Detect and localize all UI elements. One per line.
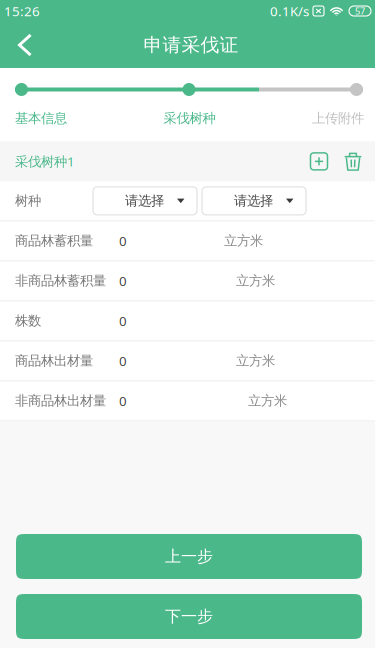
staticText: 商品林出材量 bbox=[15, 353, 93, 369]
button[interactable]: 请选择 bbox=[202, 187, 306, 215]
staticText: 采伐树种1 bbox=[15, 152, 75, 170]
staticText: 0.1K/s bbox=[270, 2, 309, 20]
button[interactable]: Add cutting species bbox=[302, 141, 336, 181]
staticText: 0 bbox=[119, 272, 127, 290]
button[interactable]: Back bbox=[0, 22, 46, 68]
staticText: 0 bbox=[119, 392, 127, 410]
staticText: 15:26 bbox=[4, 2, 40, 20]
staticText: 下一步 bbox=[165, 607, 213, 626]
staticText: 非商品林出材量 bbox=[15, 393, 106, 409]
button[interactable]: 下一步 bbox=[16, 594, 362, 639]
button[interactable]: Delete cutting species bbox=[336, 141, 370, 181]
staticText: 采伐树种 bbox=[163, 110, 215, 126]
staticText: 请选择 bbox=[125, 193, 164, 209]
staticText: 立方米 bbox=[236, 273, 275, 289]
staticText: 株数 bbox=[15, 313, 41, 329]
staticText: 基本信息 bbox=[15, 110, 67, 126]
staticText: 57 bbox=[355, 5, 365, 17]
staticText: 立方米 bbox=[248, 393, 287, 409]
staticText: 上一步 bbox=[165, 547, 213, 566]
staticText: 0 bbox=[119, 232, 127, 250]
staticText: 上传附件 bbox=[312, 110, 364, 126]
staticText: 商品林蓄积量 bbox=[15, 233, 93, 249]
button[interactable]: 上一步 bbox=[16, 534, 362, 579]
staticText: 立方米 bbox=[236, 353, 275, 369]
staticText: 树种 bbox=[15, 193, 41, 209]
staticText: 0 bbox=[119, 312, 127, 330]
staticText: 0 bbox=[119, 352, 127, 370]
staticText: 立方米 bbox=[224, 233, 263, 249]
staticText: 非商品林蓄积量 bbox=[15, 273, 106, 289]
button[interactable]: 请选择 bbox=[93, 187, 197, 215]
staticText: 申请采伐证 bbox=[143, 33, 238, 56]
staticText: 请选择 bbox=[234, 193, 273, 209]
